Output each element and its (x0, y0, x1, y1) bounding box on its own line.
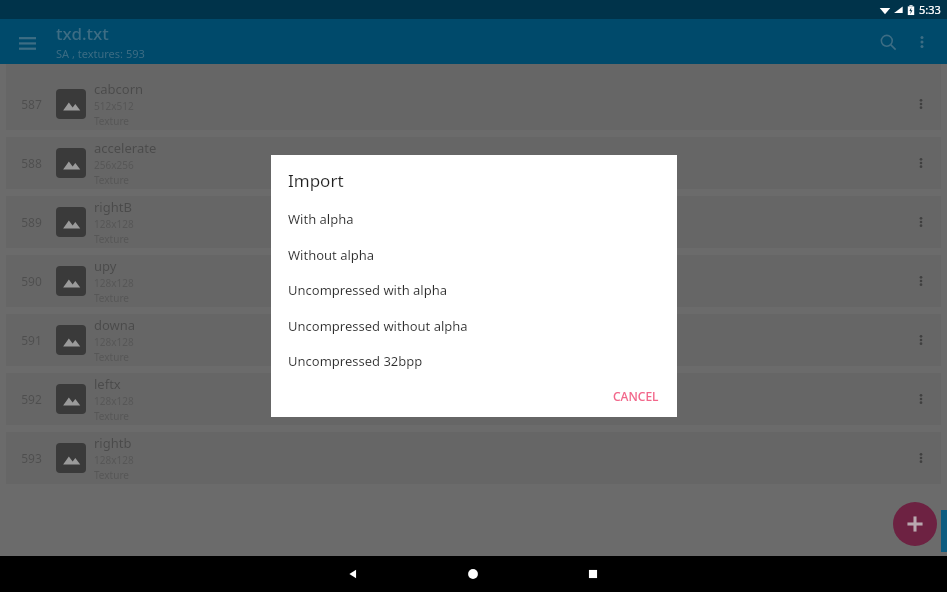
staticText: With alpha (288, 210, 354, 228)
button[interactable]: Item options (901, 196, 941, 248)
staticText: 590 (21, 273, 42, 289)
staticText: 593 (21, 450, 42, 466)
staticText: 128x128 (94, 217, 134, 231)
staticText: leftx (94, 375, 121, 393)
button[interactable]: Add (893, 502, 937, 546)
button[interactable]: Uncompressed with alpha (271, 272, 677, 307)
button[interactable]: 589 (6, 196, 941, 248)
staticText: Texture (94, 409, 129, 423)
button[interactable]: Item options (901, 373, 941, 425)
button[interactable]: Item options (901, 78, 941, 130)
button[interactable]: Navigation menu (12, 27, 42, 57)
button[interactable]: Home (455, 556, 491, 592)
button[interactable]: Search (871, 25, 905, 59)
staticText: Without alpha (288, 246, 375, 264)
staticText: Texture (78, 78, 117, 93)
staticText: cabcorn (94, 80, 144, 98)
button[interactable]: Item options (901, 432, 941, 484)
staticText: txd.txt (56, 22, 109, 45)
button[interactable]: Back (335, 556, 371, 592)
staticText: SA , textures: 593 (56, 46, 145, 61)
staticText: Uncompressed without alpha (288, 317, 468, 335)
staticText: Texture (94, 468, 129, 482)
staticText: 512x512 (94, 99, 134, 113)
staticText: 128x128 (94, 276, 134, 290)
staticText: 588 (21, 155, 42, 171)
staticText: upy (94, 257, 117, 275)
button[interactable]: 592 (6, 373, 941, 425)
button[interactable]: Without alpha (271, 237, 677, 272)
button[interactable]: Uncompressed 32bpp (271, 343, 677, 378)
staticText: 128x128 (94, 394, 134, 408)
staticText: 589 (21, 214, 42, 230)
staticText: Import (288, 169, 344, 192)
staticText: Texture (94, 232, 129, 246)
staticText: 256x256 (94, 158, 134, 172)
button[interactable]: Item options (901, 255, 941, 307)
staticText: CANCEL (613, 388, 659, 404)
staticText: 5:33 (919, 2, 941, 17)
button[interactable]: Uncompressed without alpha (271, 308, 677, 343)
staticText: rightB (94, 198, 132, 216)
button[interactable]: CANCEL (603, 381, 669, 411)
staticText: 587 (21, 96, 42, 112)
staticText: Texture (94, 350, 129, 364)
staticText: 128x128 (94, 453, 134, 467)
button[interactable]: Item options (901, 314, 941, 366)
button[interactable]: 587 (6, 78, 941, 130)
staticText: 592 (21, 391, 42, 407)
button[interactable]: Item options (901, 137, 941, 189)
button[interactable]: 588 (6, 137, 941, 189)
staticText: 591 (21, 332, 42, 348)
button[interactable]: More options (905, 25, 939, 59)
staticText: Uncompressed with alpha (288, 281, 448, 299)
button[interactable]: 590 (6, 255, 941, 307)
button[interactable]: 593 (6, 432, 941, 484)
staticText: downa (94, 316, 136, 334)
staticText: Texture (94, 114, 129, 128)
staticText: Texture (94, 173, 129, 187)
staticText: Texture (94, 291, 129, 305)
button[interactable]: With alpha (271, 201, 677, 236)
button[interactable]: Recent apps (575, 556, 611, 592)
staticText: rightb (94, 434, 132, 452)
button[interactable]: Texture (6, 48, 941, 100)
staticText: accelerate (94, 139, 157, 157)
staticText: 128x128 (94, 335, 134, 349)
button[interactable]: 591 (6, 314, 941, 366)
staticText: Uncompressed 32bpp (288, 352, 423, 370)
